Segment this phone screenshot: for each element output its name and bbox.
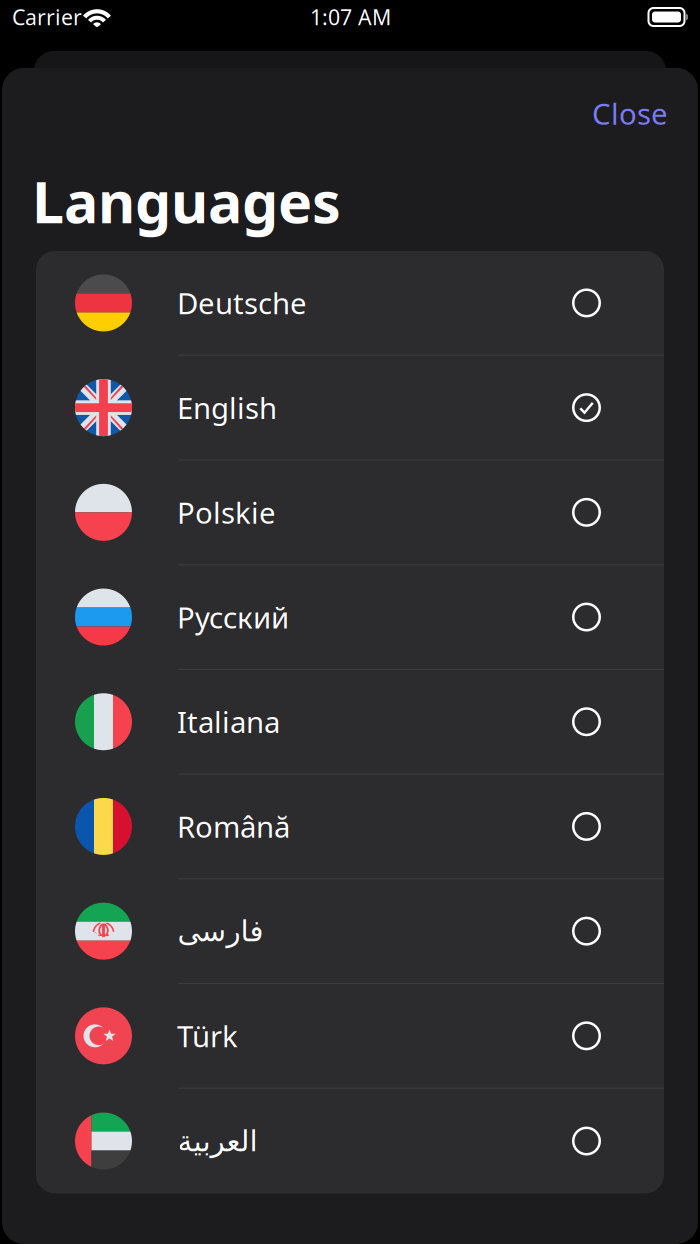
button[interactable]: Türk [36,984,664,1089]
staticText: العربية [177,1124,257,1158]
button[interactable]: Română [36,775,664,879]
staticText: Carrier [12,3,82,31]
staticText: Languages [32,163,341,239]
button[interactable]: Close [552,82,698,145]
button[interactable]: العربية [36,1089,664,1193]
staticText: فارسی [177,914,263,948]
staticText: Polskie [177,493,276,532]
button[interactable]: فارسی [36,879,664,984]
staticText: Русский [177,598,289,637]
button[interactable]: Deutsche [36,251,664,356]
staticText: English [177,388,277,427]
button[interactable]: Polskie [36,460,664,565]
staticText: Türk [177,1016,238,1055]
button[interactable]: Italiana [36,670,664,775]
staticText: Română [177,807,290,846]
staticText: Italiana [177,702,280,741]
staticText: Close [592,94,668,133]
staticText: 1:07 AM [310,3,391,31]
button[interactable]: English [36,356,664,460]
staticText: Deutsche [177,283,307,322]
button[interactable]: Русский [36,565,664,670]
